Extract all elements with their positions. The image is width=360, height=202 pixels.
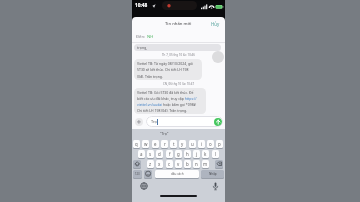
staticText: g (177, 151, 180, 157)
staticText: Hủy (211, 21, 220, 27)
staticText: l (215, 151, 217, 157)
button[interactable] (135, 118, 143, 126)
button[interactable]: h (184, 150, 191, 158)
button[interactable]: trọng, (134, 44, 221, 51)
button[interactable]: w (142, 140, 149, 148)
button[interactable]: Nhập (201, 170, 224, 178)
staticText: v (177, 161, 180, 167)
staticText: x (158, 161, 161, 167)
button[interactable]: Hủy (211, 21, 220, 27)
staticText: Tin nhắn mới (165, 21, 192, 27)
button[interactable]: n (193, 160, 200, 168)
button[interactable]: a (138, 150, 145, 158)
staticText: i (201, 141, 203, 147)
button[interactable]: p (216, 140, 223, 148)
button[interactable]: z (147, 160, 154, 168)
button[interactable]: l (212, 150, 219, 158)
button[interactable]: m (202, 160, 209, 168)
button[interactable]: b (184, 160, 191, 168)
staticText: c (168, 161, 171, 167)
staticText: 10:48 (135, 2, 148, 9)
staticText: r (164, 141, 166, 147)
button[interactable] (215, 160, 223, 168)
staticText: s (149, 151, 152, 157)
staticText: b (186, 161, 189, 167)
button[interactable]: k (202, 150, 209, 158)
staticText: dấu cách (171, 172, 184, 176)
button[interactable]: “Trọ” (160, 131, 169, 136)
staticText: NH (147, 34, 154, 40)
staticText: n (195, 161, 198, 167)
staticText: Viettel TB: Gói 5T30 đã kết thúc. Để biế… (137, 90, 197, 113)
staticText: Th 7, 05 thg 10 lúc 10:46 (162, 53, 195, 57)
staticText: h (186, 151, 189, 157)
staticText: CN, 06 thg 10 lúc 10:47 (163, 82, 195, 86)
staticText: z (149, 161, 152, 167)
button[interactable]: y (179, 140, 186, 148)
button[interactable]: r (161, 140, 168, 148)
button[interactable] (212, 182, 219, 191)
button[interactable]: q (133, 140, 140, 148)
button[interactable]: x (156, 160, 163, 168)
button[interactable]: v (175, 160, 182, 168)
staticText: 123 (135, 172, 140, 176)
staticText: t (173, 141, 175, 147)
staticText: k (204, 151, 207, 157)
button[interactable] (144, 170, 152, 178)
button[interactable]: 123 (133, 170, 142, 178)
button[interactable]: d (156, 150, 163, 158)
button[interactable]: g (175, 150, 182, 158)
staticText: d (158, 151, 161, 157)
staticText: m (203, 161, 208, 167)
staticText: Nhập (209, 172, 217, 176)
staticText: p (218, 141, 221, 147)
button[interactable] (140, 182, 148, 190)
button[interactable] (214, 118, 222, 126)
staticText: o (209, 141, 212, 147)
button[interactable]: t (170, 140, 177, 148)
button[interactable]: o (207, 140, 214, 148)
button[interactable]: Trọ (146, 116, 223, 127)
staticText: “Trọ” (160, 131, 169, 136)
button[interactable] (133, 160, 141, 168)
button[interactable]: s (147, 150, 154, 158)
staticText: q (135, 141, 138, 147)
staticText: f (169, 151, 171, 157)
staticText: j (196, 151, 198, 157)
staticText: Viettel TB: Từ ngày 08/10/2024, gói 5T30… (137, 61, 193, 79)
staticText: Đến: (136, 34, 146, 40)
staticText: e (154, 141, 157, 147)
button[interactable]: j (193, 150, 200, 158)
staticText: trọng, (137, 45, 148, 50)
button[interactable]: c (166, 160, 173, 168)
button[interactable]: e (152, 140, 159, 148)
button[interactable]: u (189, 140, 196, 148)
staticText: w (144, 141, 148, 147)
staticText: u (191, 141, 194, 147)
staticText: Trọ (151, 119, 157, 124)
button[interactable]: NH (147, 34, 154, 40)
staticText: a (140, 151, 143, 157)
button[interactable]: dấu cách (155, 170, 199, 178)
button[interactable]: f (166, 150, 173, 158)
staticText: y (181, 141, 184, 147)
button[interactable]: i (198, 140, 205, 148)
